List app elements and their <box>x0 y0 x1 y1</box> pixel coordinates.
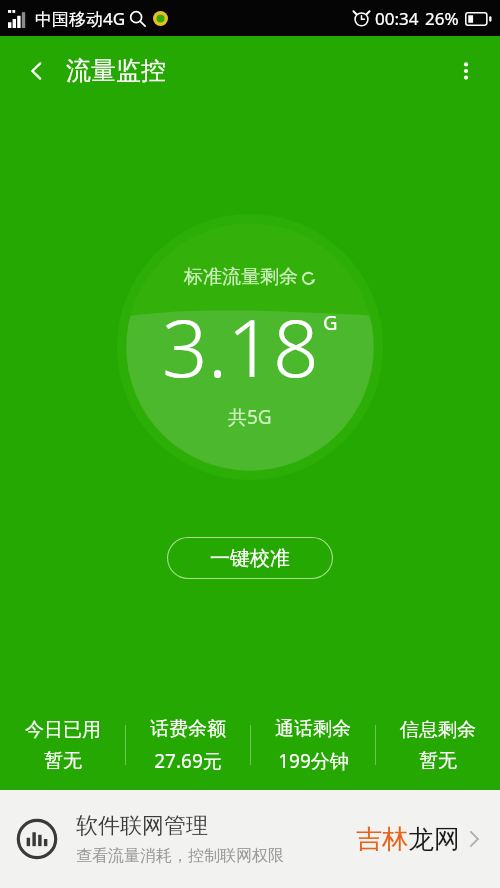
button[interactable]: 一键校准 <box>167 537 333 579</box>
staticText: 今日已用 <box>25 718 101 742</box>
staticText: 一键校准 <box>210 546 290 571</box>
staticText: 查看流量消耗，控制联网权限 <box>76 846 284 866</box>
button[interactable]: 通话剩余 <box>251 706 375 784</box>
staticText: 中国移动4G <box>35 7 126 30</box>
staticText: 流量监控 <box>66 55 166 86</box>
staticText: 00:34 <box>375 7 419 30</box>
staticText: 标准流量剩余 <box>184 265 298 289</box>
staticText: 通话剩余 <box>275 717 351 741</box>
button[interactable]: 返回 <box>16 50 58 92</box>
staticText: 龙网 <box>408 823 460 856</box>
button[interactable]: 软件联网管理 <box>0 790 500 888</box>
staticText: 3.18 <box>162 291 319 400</box>
other: 进入 <box>464 829 484 849</box>
staticText: 暂无 <box>44 749 82 773</box>
staticText: 软件联网管理 <box>76 812 208 840</box>
staticText: 吉林 <box>356 823 408 856</box>
staticText: 199分钟 <box>278 748 349 774</box>
staticText: G <box>323 309 338 336</box>
button[interactable]: 信息剩余 <box>376 706 500 784</box>
button[interactable]: 今日已用 <box>0 706 125 784</box>
staticText: 话费余额 <box>150 717 226 741</box>
staticText: 共5G <box>228 404 272 430</box>
staticText: 暂无 <box>419 749 457 773</box>
staticText: 27.69元 <box>154 748 222 774</box>
staticText: 信息剩余 <box>400 718 476 742</box>
staticText: 26% <box>425 7 459 30</box>
button[interactable]: 话费余额 <box>126 706 250 784</box>
button[interactable]: 更多选项 <box>444 49 488 93</box>
